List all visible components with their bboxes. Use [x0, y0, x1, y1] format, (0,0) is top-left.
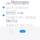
staticText: Thanks for the help	[6, 24, 33, 27]
button[interactable]: Design Team	[0, 11, 40, 19]
button[interactable]: Jane Appleseed	[0, 3, 40, 11]
staticText: Lunch tomorrow sounds	[6, 6, 28, 13]
button[interactable]: Mark Diaz	[0, 19, 40, 27]
staticText: Mark Diaz	[6, 19, 17, 23]
staticText: Updated the mockups	[6, 16, 36, 19]
staticText: Design Team	[6, 11, 23, 15]
staticText: Messages	[11, 0, 29, 4]
button[interactable]: Send	[20, 30, 26, 33]
staticText: Jane Appleseed	[6, 2, 29, 5]
